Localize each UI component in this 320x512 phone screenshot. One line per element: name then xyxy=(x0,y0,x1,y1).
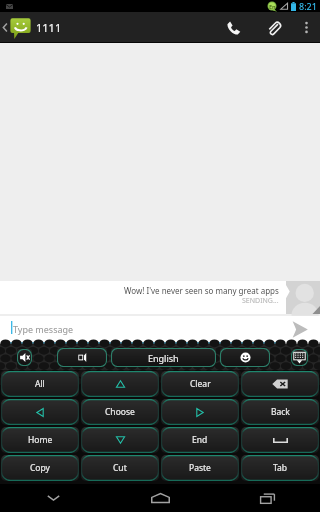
staticText: En xyxy=(269,3,276,10)
staticText: SENDING... xyxy=(242,296,279,306)
staticText: Copy xyxy=(30,462,50,474)
button[interactable]: Sound xyxy=(17,349,32,366)
button[interactable]: English xyxy=(111,348,216,367)
button[interactable]: All xyxy=(1,371,79,397)
button[interactable]: Cut xyxy=(81,455,159,481)
button[interactable]: Clear xyxy=(161,371,239,397)
staticText: Cut xyxy=(113,462,127,474)
staticText: Wow! I've never seen so many great apps xyxy=(124,285,279,296)
button[interactable]: Recent apps xyxy=(232,484,302,512)
button[interactable]: Paste xyxy=(161,455,239,481)
button[interactable]: More options xyxy=(292,12,320,43)
button[interactable]: Switch keyboard xyxy=(291,349,308,366)
button[interactable]: Back xyxy=(241,399,319,425)
staticText: Clear xyxy=(190,378,211,390)
button[interactable]: Home xyxy=(1,427,79,453)
staticText: End xyxy=(192,434,208,446)
button[interactable]: Home xyxy=(125,484,195,512)
staticText: Tab xyxy=(273,462,288,474)
button[interactable]: Type message xyxy=(0,316,280,344)
staticText: All xyxy=(35,378,45,390)
staticText: Type message xyxy=(13,323,74,335)
staticText: 8:21 xyxy=(299,0,317,12)
button[interactable]: Choose xyxy=(81,399,159,425)
other: Navigate up xyxy=(2,22,8,33)
button[interactable] xyxy=(81,427,159,453)
button[interactable] xyxy=(241,427,319,453)
button[interactable] xyxy=(81,371,159,397)
button[interactable] xyxy=(1,399,79,425)
button[interactable]: End xyxy=(161,427,239,453)
button[interactable] xyxy=(161,399,239,425)
button[interactable]: Attach xyxy=(254,12,292,43)
staticText: Choose xyxy=(105,406,135,418)
button[interactable]: Hide keyboard xyxy=(18,484,88,512)
button[interactable]: Tab xyxy=(241,455,319,481)
staticText: 1111 xyxy=(36,20,62,35)
button[interactable]: Send xyxy=(280,316,320,344)
button[interactable]: Call xyxy=(214,12,254,43)
button[interactable] xyxy=(241,371,319,397)
staticText: Paste xyxy=(189,462,211,474)
button[interactable]: Copy xyxy=(1,455,79,481)
staticText: Back xyxy=(271,406,290,418)
staticText: English xyxy=(148,352,179,364)
button[interactable]: Emoji xyxy=(220,348,270,367)
button[interactable]: Navigate up xyxy=(0,12,62,43)
staticText: Home xyxy=(28,434,53,446)
button[interactable]: Clipboard xyxy=(57,348,107,367)
